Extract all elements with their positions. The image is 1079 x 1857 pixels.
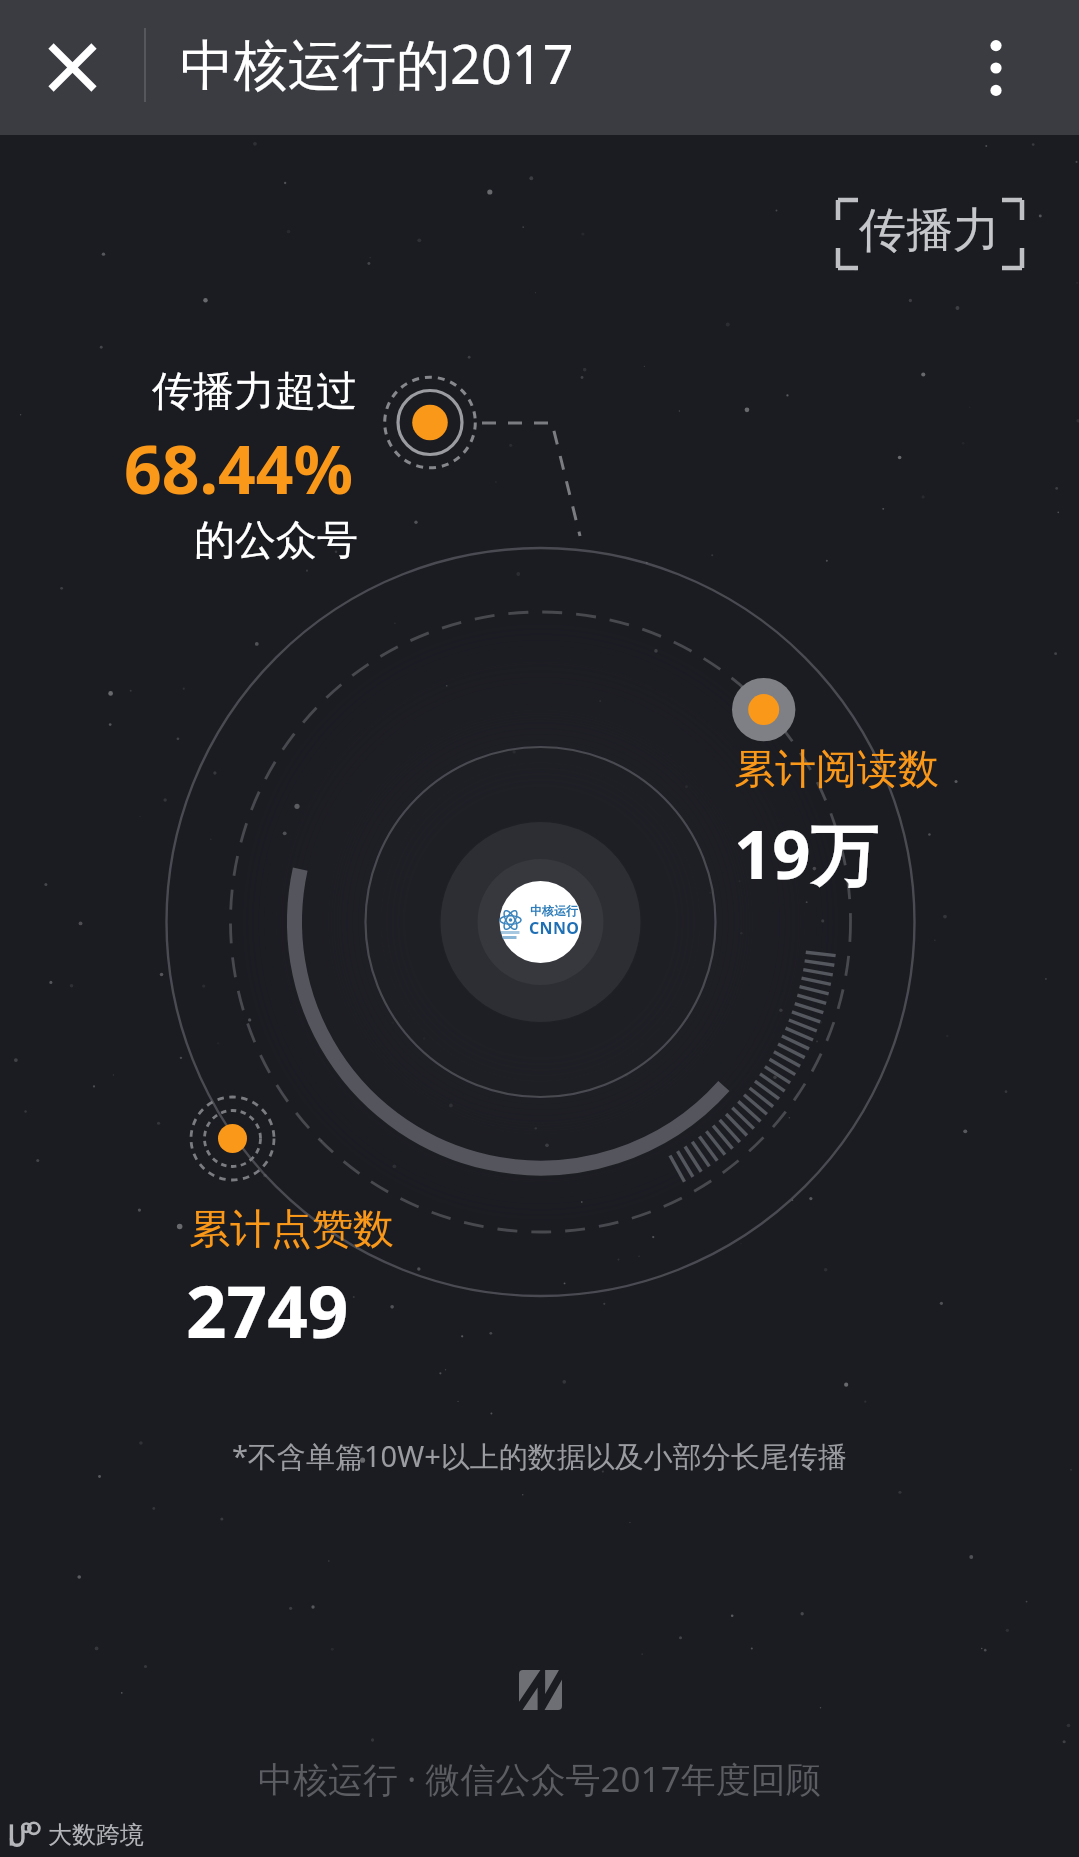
staticText: *不含单篇10W+以上的数据以及小部分长尾传播 bbox=[232, 1436, 847, 1476]
staticText: 68.44% bbox=[124, 423, 354, 513]
staticText: 中核运行的2017 bbox=[180, 26, 574, 100]
staticText: CNNO bbox=[529, 917, 580, 939]
staticText: 的公众号 bbox=[194, 515, 358, 567]
staticText: 大数跨境 bbox=[48, 1820, 144, 1850]
staticText: 中核运行 · 微信公众号2017年度回顾 bbox=[258, 1755, 821, 1803]
staticText: 传播力超过 bbox=[152, 366, 357, 418]
staticText: 累计点赞数 bbox=[189, 1204, 394, 1256]
staticText: 中核运行 bbox=[530, 903, 578, 918]
staticText: 传播力 bbox=[859, 201, 1000, 260]
staticText: 累计阅读数 bbox=[734, 744, 939, 796]
staticText: 19万 bbox=[734, 807, 878, 899]
staticText: 2749 bbox=[186, 1262, 349, 1359]
button[interactable]: More options bbox=[913, 0, 1079, 135]
button[interactable]: Close bbox=[0, 0, 145, 135]
